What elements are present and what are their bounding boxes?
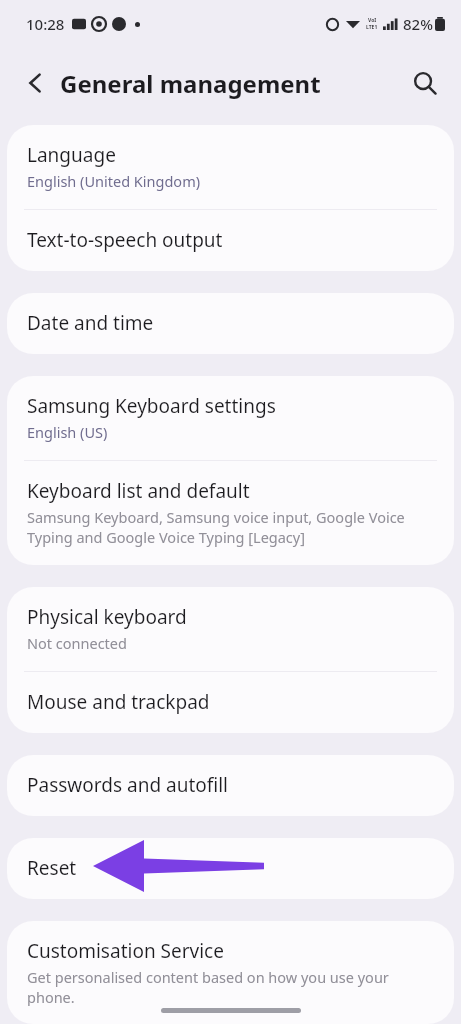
- button[interactable]: Customisation Service: [7, 921, 454, 1024]
- button[interactable]: Search: [403, 61, 447, 105]
- button[interactable]: Keyboard list and default: [7, 461, 454, 565]
- staticText: Physical keyboard: [27, 604, 187, 630]
- button[interactable]: Reset: [7, 838, 454, 899]
- button[interactable]: Physical keyboard: [7, 587, 454, 671]
- staticText: Passwords and autofill: [27, 772, 229, 798]
- staticText: VoI: [368, 17, 377, 24]
- staticText: General management: [60, 67, 321, 100]
- staticText: Customisation Service: [27, 938, 224, 964]
- staticText: Keyboard list and default: [27, 478, 250, 504]
- staticText: Mouse and trackpad: [27, 689, 210, 715]
- staticText: Reset: [27, 855, 77, 881]
- button[interactable]: Samsung Keyboard settings: [7, 376, 454, 460]
- staticText: Date and time: [27, 310, 154, 336]
- staticText: LTE1: [366, 24, 378, 31]
- button[interactable]: Back: [14, 61, 58, 105]
- button[interactable]: Text-to-speech output: [7, 210, 454, 271]
- button[interactable]: Language: [7, 125, 454, 209]
- staticText: 82%: [403, 14, 433, 34]
- staticText: Text-to-speech output: [27, 227, 223, 253]
- staticText: Samsung Keyboard settings: [27, 393, 276, 419]
- staticText: English (United Kingdom): [27, 171, 201, 191]
- button[interactable]: Mouse and trackpad: [7, 672, 454, 733]
- staticText: Language: [27, 142, 116, 168]
- staticText: Get personalised content based on how yo…: [27, 967, 430, 1006]
- button[interactable]: Date and time: [7, 293, 454, 354]
- staticText: 10:28: [26, 14, 65, 34]
- staticText: English (US): [27, 422, 108, 442]
- staticText: Samsung Keyboard, Samsung voice input, G…: [27, 507, 430, 547]
- staticText: Not connected: [27, 633, 127, 653]
- button[interactable]: Passwords and autofill: [7, 755, 454, 816]
